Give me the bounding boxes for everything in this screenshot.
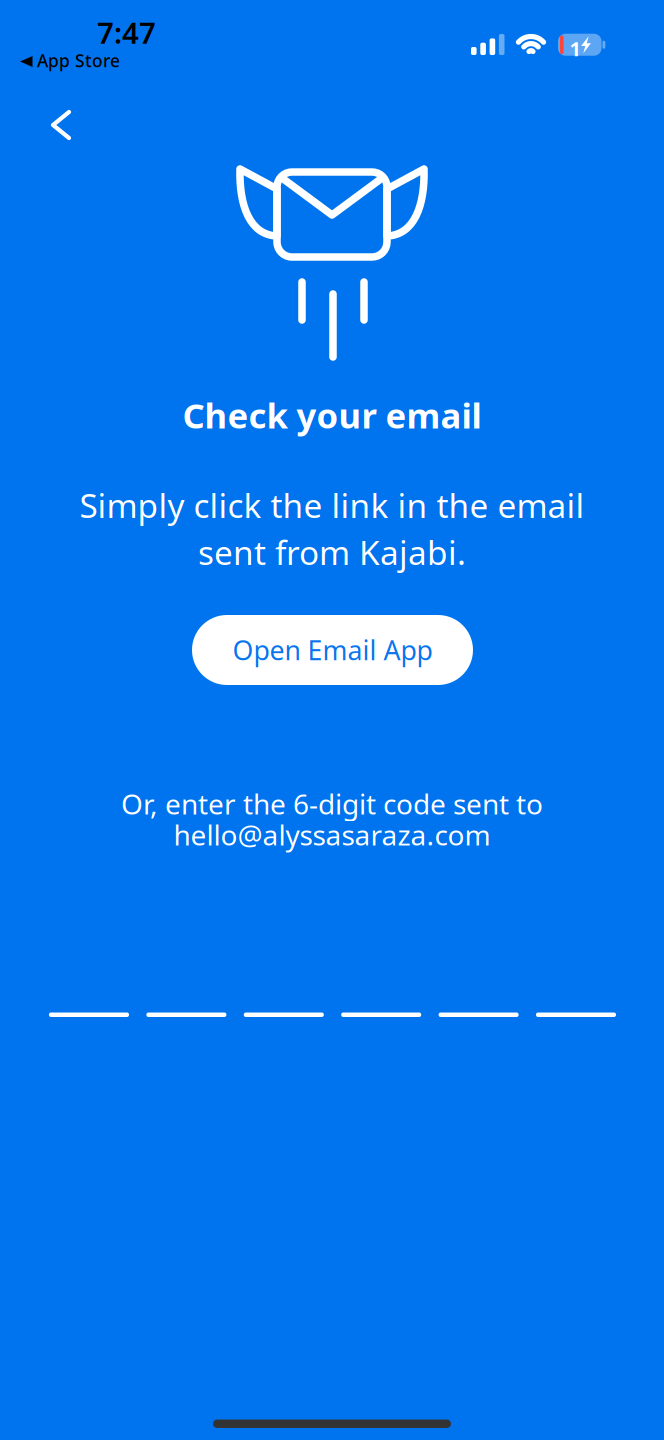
staticText: Open Email App [232,632,432,668]
staticText: App Store [37,49,120,72]
staticText: 7:47 [97,13,156,52]
staticText: Check your email [182,392,481,438]
button[interactable]: Open Email App [192,615,473,685]
button[interactable]: Back [31,94,93,156]
staticText: sent from Kajabi. [198,530,466,574]
staticText: 1 [569,35,580,62]
staticText: Simply click the link in the email [79,483,584,527]
staticText: Or, enter the 6-digit code sent to [121,785,543,822]
staticText: hello@alyssasaraza.com [173,816,490,853]
